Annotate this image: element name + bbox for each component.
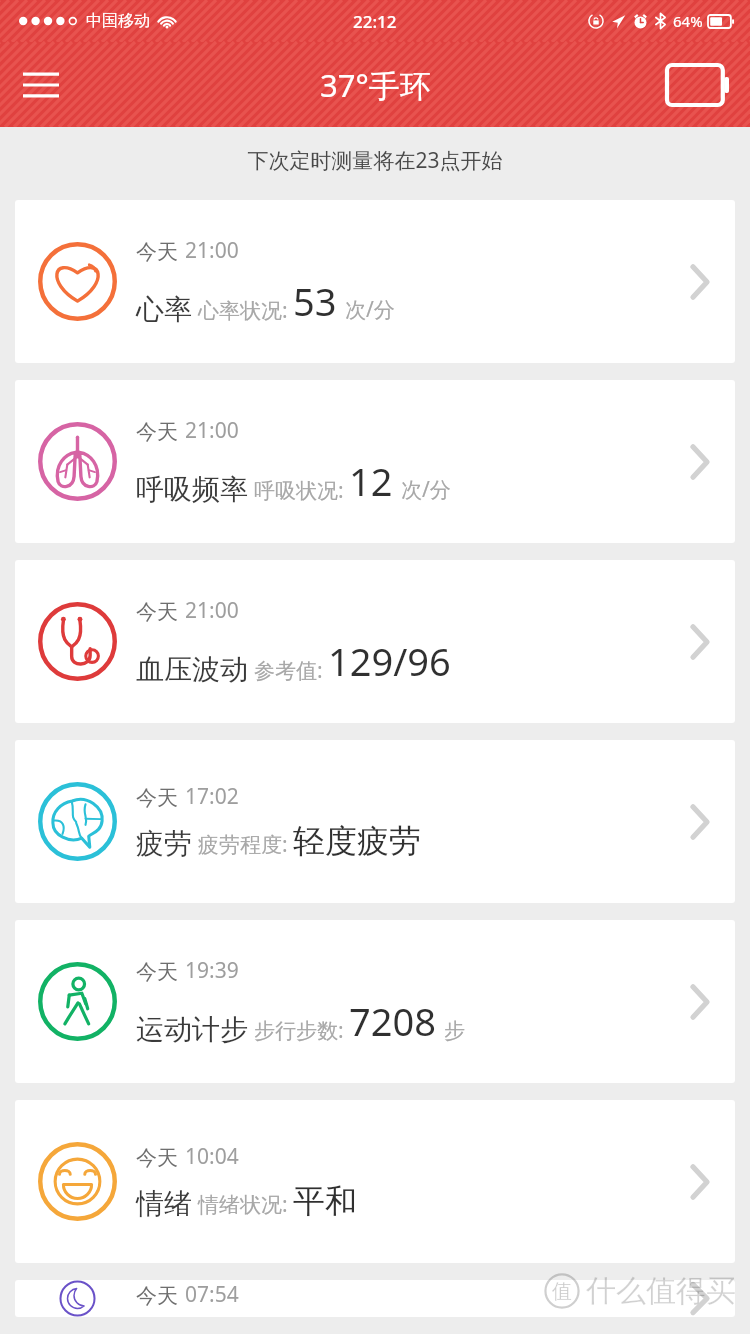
button[interactable]: Menu <box>10 54 72 116</box>
staticText: 今天 <box>136 959 178 985</box>
staticText: 疲劳程度: <box>198 830 288 859</box>
staticText: 今天 <box>136 239 178 265</box>
staticText: 53 <box>293 275 337 327</box>
button[interactable]: Battery <box>662 54 734 116</box>
staticText: 22:12 <box>353 10 397 33</box>
staticText: 次/分 <box>401 475 451 504</box>
staticText: 运动计步 <box>136 1012 248 1047</box>
button[interactable]: 今天 <box>15 1280 735 1317</box>
staticText: 10:04 <box>185 1142 239 1171</box>
staticText: 21:00 <box>185 236 239 265</box>
staticText: 今天 <box>136 1145 178 1171</box>
staticText: 参考值: <box>254 656 323 685</box>
staticText: 值 <box>552 1279 572 1304</box>
button[interactable]: 今天 <box>15 560 735 723</box>
button[interactable]: 今天 <box>15 1100 735 1263</box>
staticText: 今天 <box>136 1283 178 1309</box>
staticText: 血压波动 <box>136 652 248 687</box>
staticText: 今天 <box>136 419 178 445</box>
staticText: 情绪状况: <box>198 1190 288 1219</box>
staticText: 37°手环 <box>320 64 431 106</box>
staticText: 21:00 <box>185 596 239 625</box>
staticText: 今天 <box>136 785 178 811</box>
staticText: 64% <box>673 11 703 31</box>
staticText: 情绪 <box>136 1186 192 1221</box>
staticText: 中国移动 <box>86 11 150 31</box>
staticText: 步行步数: <box>254 1016 344 1045</box>
staticText: 今天 <box>136 599 178 625</box>
staticText: 轻度疲劳 <box>293 821 421 861</box>
staticText: 呼吸状况: <box>254 476 344 505</box>
button[interactable]: 今天 <box>15 920 735 1083</box>
staticText: 心率 <box>136 292 192 327</box>
button[interactable]: 今天 <box>15 200 735 363</box>
staticText: 疲劳 <box>136 826 192 861</box>
staticText: 平和 <box>293 1181 357 1221</box>
staticText: 17:02 <box>185 782 239 811</box>
staticText: 12 <box>349 455 393 507</box>
staticText: 7208 <box>349 995 436 1047</box>
staticText: 步 <box>444 1018 465 1044</box>
staticText: 什么值得买 <box>586 1272 736 1310</box>
staticText: 19:39 <box>185 956 239 985</box>
staticText: 21:00 <box>185 416 239 445</box>
staticText: 129/96 <box>328 635 451 687</box>
button[interactable]: 今天 <box>15 740 735 903</box>
staticText: 07:54 <box>185 1280 239 1309</box>
staticText: 心率状况: <box>198 296 288 325</box>
staticText: 次/分 <box>345 295 395 324</box>
staticText: 呼吸频率 <box>136 472 248 507</box>
staticText: 下次定时测量将在23点开始 <box>247 146 503 175</box>
button[interactable]: 今天 <box>15 380 735 543</box>
